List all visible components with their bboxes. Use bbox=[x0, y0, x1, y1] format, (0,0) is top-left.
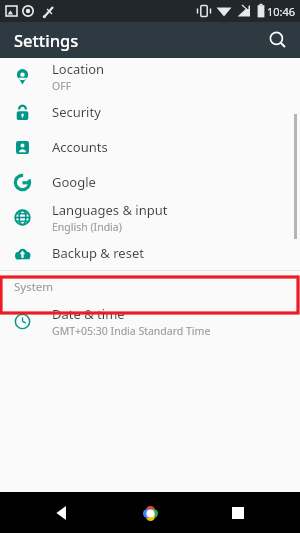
staticText: Backup & reset bbox=[52, 244, 144, 262]
staticText: Date & time bbox=[52, 305, 125, 323]
staticText: Security bbox=[52, 103, 101, 121]
staticText: GMT+05:30 India Standard Time bbox=[52, 324, 211, 338]
button[interactable]: Back bbox=[45, 496, 79, 530]
staticText: 10:46 bbox=[267, 4, 296, 19]
staticText: English (India) bbox=[52, 220, 122, 234]
staticText: Accounts bbox=[52, 138, 108, 156]
staticText: Location bbox=[52, 60, 105, 78]
button[interactable]: Date & time bbox=[0, 303, 300, 339]
staticText: OFF bbox=[52, 79, 72, 93]
button[interactable]: Google bbox=[0, 164, 300, 199]
button[interactable]: Accounts bbox=[0, 129, 300, 164]
button[interactable]: Languages & input bbox=[0, 199, 300, 235]
button[interactable]: Location bbox=[0, 58, 300, 94]
staticText: Google bbox=[52, 173, 96, 191]
button[interactable]: Recent apps bbox=[221, 496, 255, 530]
button[interactable]: Backup & reset bbox=[0, 235, 300, 270]
button[interactable]: Home bbox=[133, 496, 167, 530]
staticText: Languages & input bbox=[52, 201, 168, 219]
staticText: System bbox=[14, 279, 54, 295]
button[interactable]: Security bbox=[0, 94, 300, 129]
button[interactable]: Search bbox=[262, 24, 294, 56]
staticText: Settings bbox=[14, 29, 79, 51]
